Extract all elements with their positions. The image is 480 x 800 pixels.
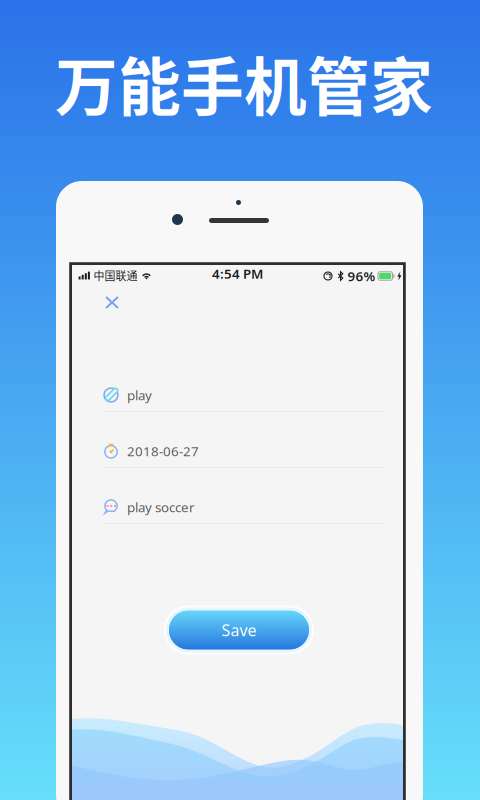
staticText: 96% bbox=[347, 267, 375, 285]
staticText: 2018-06-27 bbox=[127, 442, 199, 460]
staticText: Save bbox=[221, 619, 256, 641]
button[interactable]: play bbox=[103, 356, 385, 412]
button[interactable]: play soccer bbox=[103, 468, 385, 524]
staticText: 中国联通 bbox=[93, 268, 137, 283]
staticText: 4:54 PM bbox=[212, 265, 263, 282]
button[interactable]: Close bbox=[95, 286, 129, 319]
button[interactable]: 2018-06-27 bbox=[103, 412, 385, 468]
staticText: play soccer bbox=[127, 498, 195, 516]
staticText: 万能手机管家 bbox=[55, 37, 433, 128]
staticText: play bbox=[127, 386, 152, 404]
button[interactable]: Save bbox=[163, 604, 315, 656]
